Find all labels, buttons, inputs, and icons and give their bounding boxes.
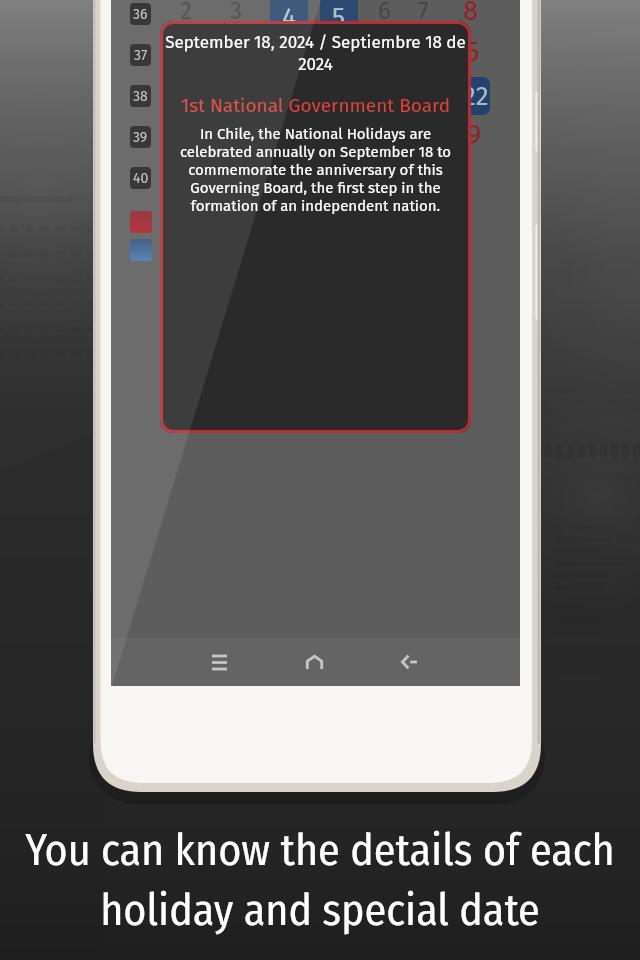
button[interactable]: 4 [270,0,308,27]
staticText: You can know the details of each holiday… [0,824,640,936]
button[interactable]: Home [290,638,338,686]
button[interactable]: 5 [320,0,358,27]
button[interactable]: Back [385,638,433,686]
button[interactable]: 22 [461,77,490,115]
staticText: 22 [463,81,489,112]
button[interactable]: Special date colour [130,239,152,261]
button[interactable]: Holiday colour [130,211,152,233]
staticText: 39 [133,129,148,146]
staticText: 5 [332,2,346,27]
staticText: 4 [282,2,296,27]
staticText: 7 [418,0,429,26]
staticText: 3 [230,0,242,26]
button[interactable]: 36 [130,3,151,25]
button[interactable]: September 18, 2024 / Septiembre 18 de 20… [160,21,471,433]
button[interactable]: 38 [130,85,151,107]
button[interactable]: 40 [130,167,151,189]
staticText: 8 [463,0,478,27]
staticText: 40 [133,170,149,187]
staticText: 38 [133,88,148,105]
staticText: In Chile, the National Holidays are cele… [162,125,469,215]
staticText: 2 [180,0,192,26]
staticText: September 18, 2024 / Septiembre 18 de 20… [162,32,469,75]
button[interactable]: 39 [130,126,151,148]
staticText: 29 [454,119,482,151]
button[interactable]: 37 [130,44,151,66]
staticText: 6 [378,0,391,26]
staticText: 36 [133,6,148,23]
staticText: 15 [454,36,480,68]
button[interactable]: Menu [195,638,243,686]
staticText: 37 [134,47,148,64]
staticText: 1st National Government Board [162,94,469,117]
